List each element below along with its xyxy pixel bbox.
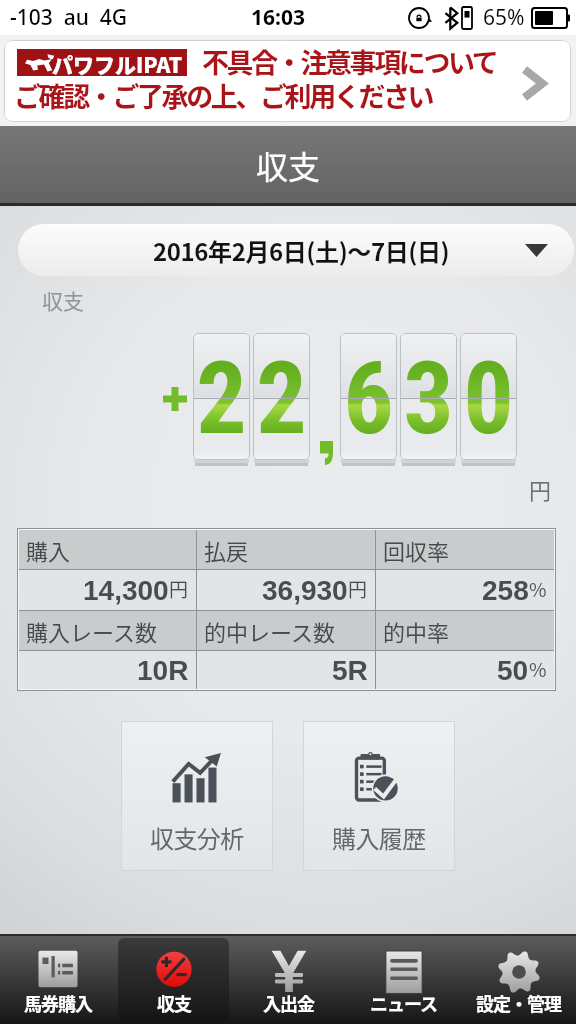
button[interactable]: 2016年2月6日(土)〜7日(日) (18, 224, 574, 276)
staticText: ニュース (370, 990, 438, 1016)
staticText: 収支分析 (150, 820, 244, 855)
staticText: % (529, 575, 547, 603)
staticText: 円 (348, 575, 368, 603)
button[interactable]: 馬券購入 (2, 938, 114, 1022)
staticText: 16:03 (251, 3, 305, 32)
staticText: 払戻 (204, 534, 249, 566)
staticText: 入出金 (263, 990, 314, 1016)
staticText: 36,930 (262, 575, 348, 606)
button[interactable]: 収支分析 (121, 721, 273, 871)
button[interactable]: 入出金 (233, 938, 344, 1022)
staticText: パワフルIPAT (52, 49, 183, 76)
staticText: 3 (403, 340, 454, 457)
other: Open notice (521, 66, 546, 101)
button[interactable]: ニュース (348, 938, 459, 1022)
button[interactable]: 購入履歴 (303, 721, 455, 871)
staticText: 設定・管理 (476, 990, 561, 1016)
staticText: 収支 (256, 142, 321, 188)
staticText: 6 (343, 340, 394, 457)
staticText: 回収率 (383, 534, 450, 566)
staticText: 馬券購入 (24, 990, 92, 1016)
staticText: % (529, 655, 547, 683)
staticText: ご確認・ご了承の上、ご利用ください (14, 76, 433, 115)
staticText: 円 (529, 473, 552, 505)
staticText: 収支 (42, 285, 84, 315)
staticText: 的中レース数 (204, 615, 335, 647)
staticText: 購入履歴 (332, 820, 426, 855)
staticText: 10R (137, 655, 189, 686)
staticText: -103 au 4G (10, 3, 128, 32)
staticText: 2016年2月6日(土)〜7日(日) (153, 233, 450, 268)
staticText: 50 (497, 655, 529, 686)
staticText: 258 (482, 575, 529, 606)
button[interactable]: 設定・管理 (463, 938, 574, 1022)
staticText: 収支 (157, 990, 191, 1016)
button[interactable]: 収支 (118, 938, 229, 1022)
staticText: 2 (256, 340, 307, 457)
staticText: 14,300 (83, 575, 169, 606)
staticText: 購入レース数 (26, 615, 157, 647)
staticText: 5R (332, 655, 368, 686)
staticText: 不具合・注意事項について (202, 42, 497, 81)
staticText: 2 (196, 340, 247, 457)
staticText: 65% (483, 3, 525, 32)
staticText: 的中率 (383, 615, 450, 647)
button[interactable]: パワフルIPAT (4, 40, 571, 122)
staticText: 円 (169, 575, 189, 603)
staticText: 0 (463, 340, 514, 457)
staticText: 購入 (26, 534, 71, 566)
